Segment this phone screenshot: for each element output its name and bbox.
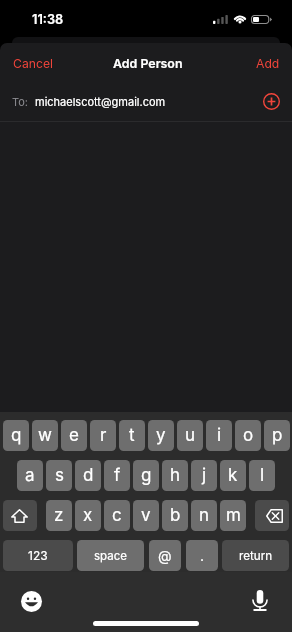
button[interactable]: o xyxy=(235,420,261,451)
button[interactable]: Add xyxy=(243,45,292,78)
button[interactable]: Backspace xyxy=(255,500,289,531)
button[interactable]: l xyxy=(249,460,275,491)
button[interactable]: q xyxy=(3,420,29,451)
staticText: Add Person xyxy=(113,56,183,71)
staticText: x xyxy=(83,505,93,526)
staticText: return xyxy=(239,549,273,563)
staticText: Add xyxy=(256,56,280,71)
button[interactable]: space xyxy=(77,540,144,571)
staticText: w xyxy=(38,425,52,446)
staticText: y xyxy=(156,425,166,446)
button[interactable]: Dictation xyxy=(249,589,271,611)
button[interactable]: g xyxy=(133,460,159,491)
button[interactable]: k xyxy=(220,460,246,491)
button[interactable]: u xyxy=(177,420,203,451)
staticText: @ xyxy=(158,547,172,564)
button[interactable]: Emoji keyboard xyxy=(21,591,42,612)
staticText: z xyxy=(54,505,64,526)
staticText: 11:38 xyxy=(32,12,64,27)
staticText: r xyxy=(100,425,107,446)
staticText: e xyxy=(69,425,79,446)
staticText: space xyxy=(94,549,127,563)
button[interactable]: p xyxy=(264,420,290,451)
staticText: . xyxy=(200,547,205,564)
staticText: michaelscott@gmail.com xyxy=(35,95,166,108)
button[interactable]: i xyxy=(206,420,232,451)
staticText: i xyxy=(217,425,222,446)
button[interactable]: h xyxy=(162,460,188,491)
staticText: Cancel xyxy=(13,56,53,71)
button[interactable]: . xyxy=(186,540,218,571)
staticText: a xyxy=(25,465,35,486)
button[interactable]: b xyxy=(162,500,188,531)
staticText: f xyxy=(114,465,121,486)
button[interactable]: a xyxy=(17,460,43,491)
staticText: u xyxy=(185,425,196,446)
button[interactable]: v xyxy=(133,500,159,531)
button[interactable]: return xyxy=(222,540,289,571)
staticText: l xyxy=(260,465,265,486)
staticText: d xyxy=(83,465,94,486)
button[interactable]: f xyxy=(104,460,130,491)
staticText: t xyxy=(129,425,135,446)
staticText: p xyxy=(272,425,283,446)
button[interactable]: y xyxy=(148,420,174,451)
staticText: q xyxy=(11,425,22,446)
button[interactable]: @ xyxy=(149,540,181,571)
button[interactable]: w xyxy=(32,420,58,451)
button[interactable]: x xyxy=(75,500,101,531)
button[interactable]: z xyxy=(46,500,72,531)
button[interactable]: j xyxy=(191,460,217,491)
button[interactable]: 123 xyxy=(3,540,73,571)
button[interactable]: c xyxy=(104,500,130,531)
staticText: m xyxy=(226,505,241,526)
staticText: j xyxy=(202,465,207,486)
button[interactable]: n xyxy=(191,500,217,531)
button[interactable]: Shift xyxy=(3,500,37,531)
button[interactable]: t xyxy=(119,420,145,451)
staticText: To: xyxy=(12,95,29,108)
button[interactable]: r xyxy=(90,420,116,451)
staticText: c xyxy=(112,505,122,526)
staticText: k xyxy=(228,465,238,486)
staticText: g xyxy=(141,465,152,486)
button[interactable]: e xyxy=(61,420,87,451)
button[interactable]: m xyxy=(220,500,246,531)
staticText: n xyxy=(199,505,210,526)
button[interactable]: Add contact xyxy=(260,90,282,112)
staticText: o xyxy=(243,425,254,446)
staticText: v xyxy=(141,505,151,526)
staticText: 123 xyxy=(28,548,48,563)
staticText: b xyxy=(170,505,181,526)
staticText: s xyxy=(55,465,64,486)
button[interactable]: Cancel xyxy=(0,45,66,78)
staticText: h xyxy=(170,465,181,486)
button[interactable]: s xyxy=(46,460,72,491)
button[interactable]: d xyxy=(75,460,101,491)
